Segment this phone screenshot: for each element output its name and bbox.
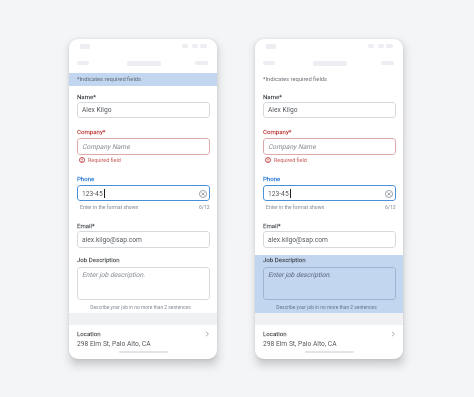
staticText: 298 Elm St, Palo Alto, CA [263,340,337,348]
staticText: *Indicates required fields [263,76,328,83]
staticText: Company* [263,128,292,135]
button[interactable]: Alex Kilgo [263,102,396,118]
other: Clear phone number [198,189,207,198]
staticText: Name* [263,93,282,100]
staticText: Alex Kilgo [82,106,112,114]
staticText: Required field [274,157,307,163]
staticText: Enter job description. [82,271,145,279]
staticText: Phone [263,175,281,182]
button[interactable]: Company Name [263,138,396,155]
staticText: Describe your job in no more than 2 sent… [74,304,207,310]
staticText: 123-45 [82,190,103,198]
button[interactable]: 123-45 [77,185,210,201]
button[interactable]: Enter job description. [77,267,210,300]
staticText: alex.kilgo@sap.com [268,236,328,244]
button[interactable]: Location [69,325,217,352]
staticText: Email* [263,222,281,229]
other: Clear phone number [384,189,393,198]
staticText: Enter in the format shown [80,204,139,210]
staticText: Alex Kilgo [268,106,298,114]
staticText: Phone [77,175,95,182]
staticText: Company Name [82,143,130,151]
staticText: Enter job description. [268,271,331,279]
button[interactable]: alex.kilgo@sap.com [77,231,210,248]
staticText: 6/12 [199,204,210,210]
staticText: 298 Elm St, Palo Alto, CA [77,340,151,348]
button[interactable]: Company Name [77,138,210,155]
staticText: 6/12 [385,204,396,210]
button[interactable]: Alex Kilgo [77,102,210,118]
staticText: Location [263,330,287,337]
staticText: Name* [77,93,96,100]
staticText: alex.kilgo@sap.com [82,236,142,244]
staticText: Job Description [263,256,306,263]
staticText: Required field [88,157,121,163]
staticText: 123-45 [268,190,289,198]
staticText: *Indicates required fields [77,76,142,83]
staticText: Company Name [268,143,316,151]
button[interactable]: Location [255,325,403,352]
button[interactable]: Enter job description. [263,267,396,300]
staticText: Location [77,330,101,337]
staticText: Describe your job in no more than 2 sent… [260,304,393,310]
staticText: Enter in the format shown [266,204,325,210]
staticText: Company* [77,128,106,135]
button[interactable]: 123-45 [263,185,396,201]
staticText: Job Description [77,256,120,263]
button[interactable]: alex.kilgo@sap.com [263,231,396,248]
staticText: Email* [77,222,95,229]
